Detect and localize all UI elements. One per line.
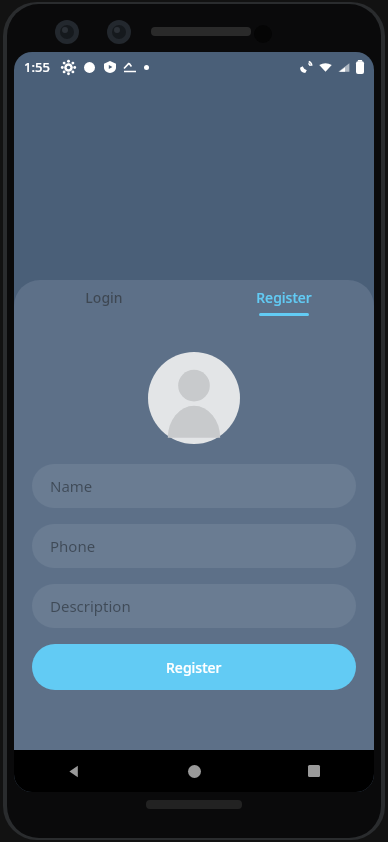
staticText: Phone [50, 536, 96, 556]
button[interactable]: Phone [32, 524, 356, 568]
button[interactable]: Name [32, 464, 356, 508]
staticText: 1:55 [24, 58, 50, 76]
staticText: Register [166, 658, 222, 677]
staticText: Description [50, 596, 131, 616]
staticText: Login [85, 288, 123, 307]
staticText: Register [256, 288, 312, 307]
button[interactable]: Recent apps [254, 750, 374, 792]
staticText: Name [50, 476, 93, 496]
button[interactable]: Login [14, 288, 194, 316]
button[interactable]: Description [32, 584, 356, 628]
button[interactable]: Home [134, 750, 254, 792]
button[interactable]: Back [14, 750, 134, 792]
button[interactable]: Register [194, 288, 374, 316]
button[interactable]: Register [32, 644, 356, 690]
